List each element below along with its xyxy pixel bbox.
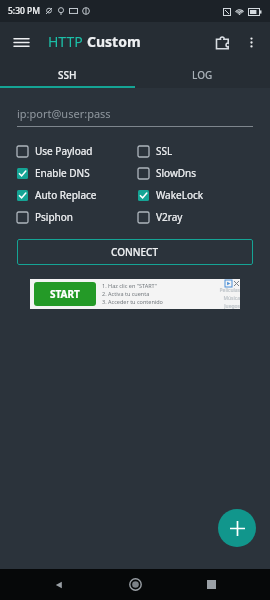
button[interactable]: Home xyxy=(118,569,152,600)
staticText: Películas xyxy=(219,287,240,294)
staticText: Psiphon xyxy=(35,210,73,224)
staticText: ip:port@user:pass xyxy=(17,106,111,121)
staticText: SlowDns xyxy=(156,166,197,180)
staticText: WakeLock xyxy=(156,188,204,202)
staticText: HTTP xyxy=(48,32,83,51)
button[interactable]: Add xyxy=(218,509,256,547)
staticText: 5:30 PM xyxy=(8,5,41,17)
staticText: Juegos xyxy=(224,303,240,309)
button[interactable]: LOG xyxy=(135,61,270,88)
button[interactable]: WakeLock xyxy=(138,188,204,202)
staticText: Auto Replace xyxy=(35,188,97,202)
button[interactable]: Plugins xyxy=(208,28,236,56)
button[interactable]: SSL xyxy=(138,144,173,158)
staticText: SSL xyxy=(156,144,173,158)
staticText: Enable DNS xyxy=(35,166,90,180)
staticText: Use Payload xyxy=(35,144,93,158)
staticText: SSH xyxy=(58,68,77,82)
button[interactable]: Enable DNS xyxy=(17,166,90,180)
staticText: 2. Activa tu cuenta xyxy=(102,290,150,297)
button[interactable]: Open navigation menu xyxy=(6,27,36,57)
button[interactable]: Use Payload xyxy=(17,144,93,158)
staticText: V2ray xyxy=(156,210,183,224)
staticText: CONNECT xyxy=(111,245,159,259)
button[interactable]: SSH xyxy=(0,61,135,88)
staticText: 3. Acceder tu contenido xyxy=(102,298,163,305)
button[interactable]: More options xyxy=(238,29,264,55)
button[interactable]: Advertisement xyxy=(30,279,240,309)
button[interactable]: V2ray xyxy=(138,210,183,224)
button[interactable]: CONNECT xyxy=(17,239,253,265)
button[interactable]: Recent apps xyxy=(194,569,228,600)
staticText: Música xyxy=(223,295,240,302)
staticText: 1. Haz clic en "START" xyxy=(102,282,157,289)
button[interactable]: Back xyxy=(42,569,76,600)
button[interactable]: Psiphon xyxy=(17,210,73,224)
button[interactable]: Auto Replace xyxy=(17,188,97,202)
staticText: START xyxy=(50,287,80,301)
staticText: Custom xyxy=(87,32,141,51)
staticText: LOG xyxy=(192,68,213,82)
button[interactable]: SlowDns xyxy=(138,166,197,180)
